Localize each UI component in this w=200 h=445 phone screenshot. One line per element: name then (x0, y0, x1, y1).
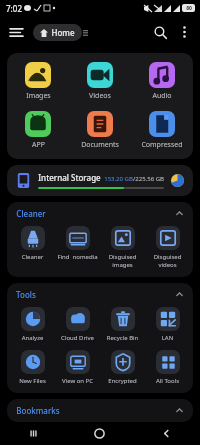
button[interactable]: Documents (69, 109, 131, 152)
button[interactable]: Cloud Drive (55, 306, 100, 343)
button[interactable]: Menu (4, 20, 28, 44)
staticText: Find nomedia (55, 253, 100, 261)
staticText: Images (26, 91, 51, 101)
button[interactable]: Disguised images (100, 225, 145, 270)
staticText: Home (51, 27, 75, 38)
staticText: Disguised videos (145, 253, 190, 269)
staticText: Audio (152, 91, 172, 101)
button[interactable]: Audio (131, 60, 193, 103)
staticText: Cloud Drive (55, 334, 100, 342)
button[interactable]: Analyze (10, 306, 55, 343)
button[interactable]: LAN (145, 306, 190, 343)
button[interactable]: Home (66, 422, 133, 445)
button[interactable]: Home (33, 24, 82, 41)
button[interactable]: View on PC (55, 349, 100, 386)
button[interactable]: New Files (10, 349, 55, 386)
staticText: 80 (186, 5, 192, 12)
button[interactable]: Disguised videos (145, 225, 190, 270)
staticText: All Tools (145, 377, 190, 385)
staticText: Encrypted (100, 377, 145, 385)
button[interactable]: Back (133, 422, 200, 445)
staticText: Disguised images (100, 253, 145, 269)
staticText: Cleaner (10, 253, 55, 261)
button[interactable]: Tools (7, 283, 193, 306)
button[interactable]: Cleaner (7, 202, 193, 225)
staticText: 153.20 GB (104, 175, 133, 183)
staticText: Recycle Bin (100, 334, 145, 342)
button[interactable]: Internal Storage (7, 165, 193, 196)
staticText: LAN (145, 334, 190, 342)
button[interactable]: Bookmarks (7, 399, 193, 422)
staticText: /225.56 GB (133, 175, 164, 183)
button[interactable]: More options (173, 21, 195, 43)
staticText: Compressed (141, 140, 183, 150)
button[interactable]: Find nomedia (55, 225, 100, 262)
staticText: New Files (10, 377, 55, 385)
button[interactable]: All Tools (145, 349, 190, 386)
button[interactable]: Recent apps (0, 422, 66, 445)
button[interactable]: Videos (69, 60, 131, 103)
staticText: 7:02 (6, 3, 22, 14)
staticText: Videos (89, 91, 111, 101)
button[interactable]: Compressed (131, 109, 193, 152)
staticText: Cleaner (16, 208, 46, 219)
staticText: Analyze (10, 334, 55, 342)
button[interactable]: Cleaner (10, 225, 55, 262)
button[interactable]: Search (148, 20, 172, 44)
staticText: APP (32, 140, 45, 150)
button[interactable]: APP (7, 109, 69, 152)
button[interactable]: Images (7, 60, 69, 103)
staticText: Bookmarks (16, 405, 60, 416)
staticText: Tools (16, 289, 36, 300)
staticText: View on PC (55, 377, 100, 385)
button[interactable]: Encrypted (100, 349, 145, 386)
button[interactable]: Recycle Bin (100, 306, 145, 343)
staticText: Documents (81, 140, 119, 150)
staticText: Internal Storage (38, 172, 101, 183)
